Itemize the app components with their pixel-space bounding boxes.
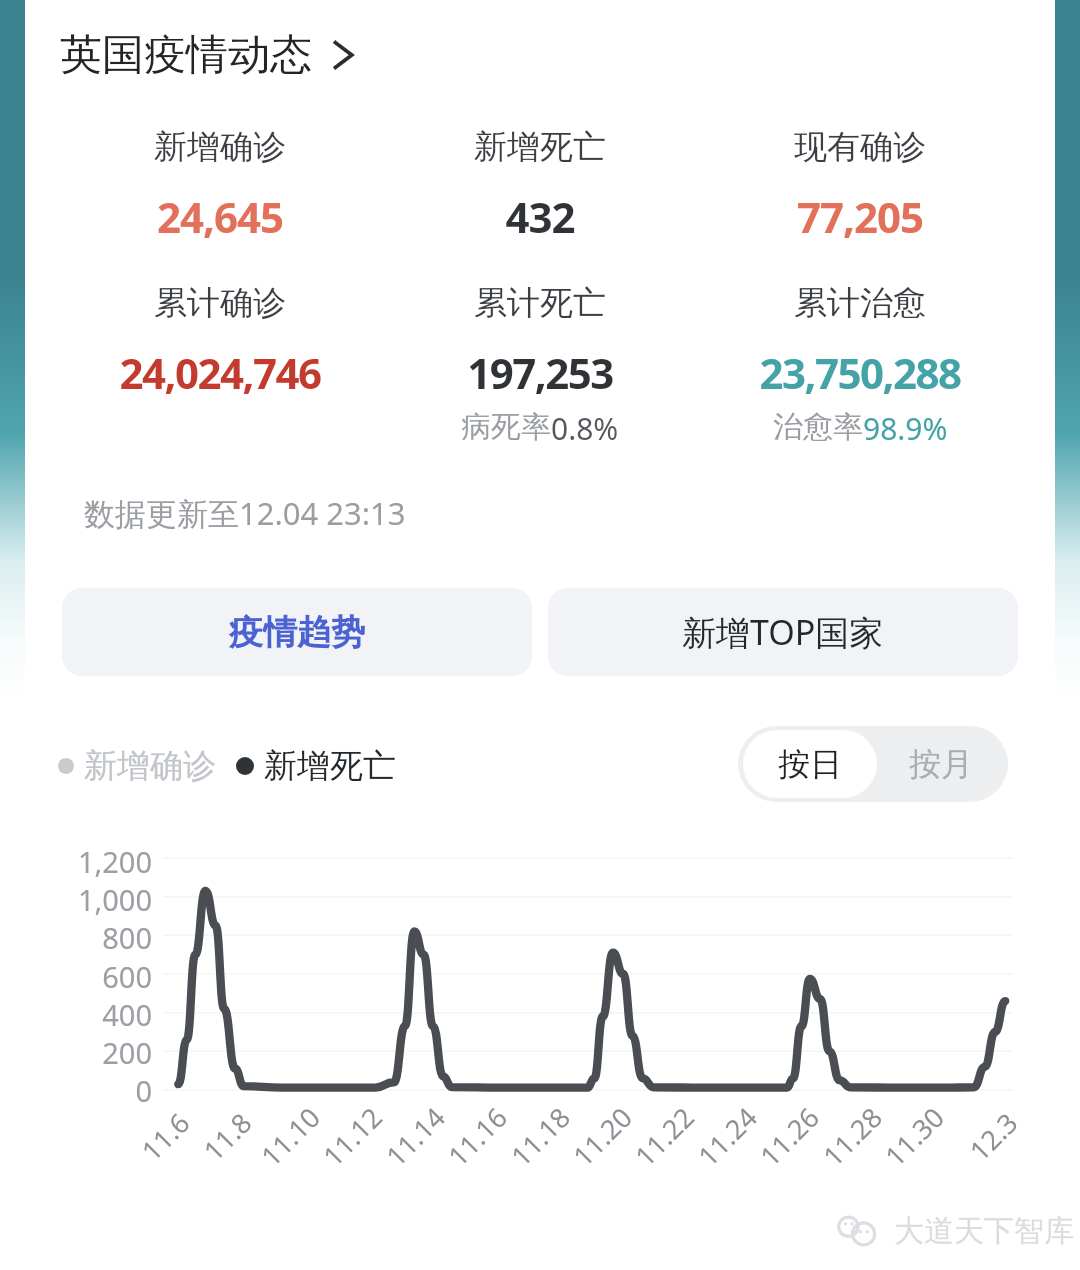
staticText: 累计确诊: [50, 282, 390, 324]
staticText: 432: [380, 188, 700, 245]
staticText: 98.9%: [863, 408, 948, 449]
staticText: 新增死亡: [380, 126, 700, 168]
staticText: 11.18: [483, 1080, 597, 1193]
staticText: 0.8%: [551, 408, 619, 449]
staticText: 77,205: [700, 188, 1020, 245]
button[interactable]: 英国疫情动态: [60, 16, 362, 94]
staticText: 24,024,746: [50, 344, 390, 401]
button[interactable]: 按月: [877, 730, 1005, 798]
staticText: 200: [56, 1033, 152, 1072]
staticText: 11.16: [420, 1080, 534, 1193]
staticText: 按日: [778, 744, 842, 784]
staticText: 英国疫情动态: [60, 29, 312, 82]
staticText: 按月: [909, 744, 973, 784]
staticText: 600: [56, 957, 152, 996]
staticText: 新增TOP国家: [682, 609, 884, 655]
staticText: 12.3: [936, 1080, 1050, 1193]
button[interactable]: 按日: [743, 730, 877, 798]
staticText: 累计死亡: [370, 282, 710, 324]
staticText: 现有确诊: [700, 126, 1020, 168]
staticText: 新增死亡: [264, 745, 396, 787]
staticText: 病死率: [461, 408, 551, 446]
staticText: 23,750,288: [690, 344, 1030, 401]
staticText: 新增确诊: [84, 745, 216, 787]
staticText: 1,000: [56, 880, 152, 919]
staticText: 11.22: [607, 1080, 721, 1193]
staticText: 11.24: [670, 1080, 784, 1193]
staticText: 11.26: [732, 1080, 846, 1193]
staticText: 11.20: [545, 1080, 659, 1193]
staticText: 大道天下智库: [894, 1212, 1074, 1250]
button[interactable]: 疫情趋势: [62, 588, 532, 676]
staticText: 24,645: [60, 188, 380, 245]
staticText: 0: [56, 1071, 152, 1110]
staticText: 疫情趋势: [229, 611, 365, 654]
button[interactable]: 新增TOP国家: [548, 588, 1018, 676]
staticText: 11.28: [795, 1080, 909, 1193]
staticText: 400: [56, 995, 152, 1034]
staticText: 11.12: [295, 1080, 409, 1193]
staticText: 新增确诊: [60, 126, 380, 168]
staticText: 11.6: [108, 1080, 222, 1193]
staticText: 197,253: [370, 344, 710, 401]
staticText: 数据更新至12.04 23:13: [84, 492, 406, 534]
staticText: 11.30: [857, 1080, 971, 1193]
staticText: 11.8: [170, 1080, 284, 1193]
staticText: 累计治愈: [690, 282, 1030, 324]
staticText: 治愈率: [773, 408, 863, 446]
staticText: 11.14: [358, 1080, 472, 1193]
staticText: 800: [56, 918, 152, 957]
staticText: 1,200: [56, 842, 152, 881]
staticText: 11.10: [233, 1080, 347, 1193]
